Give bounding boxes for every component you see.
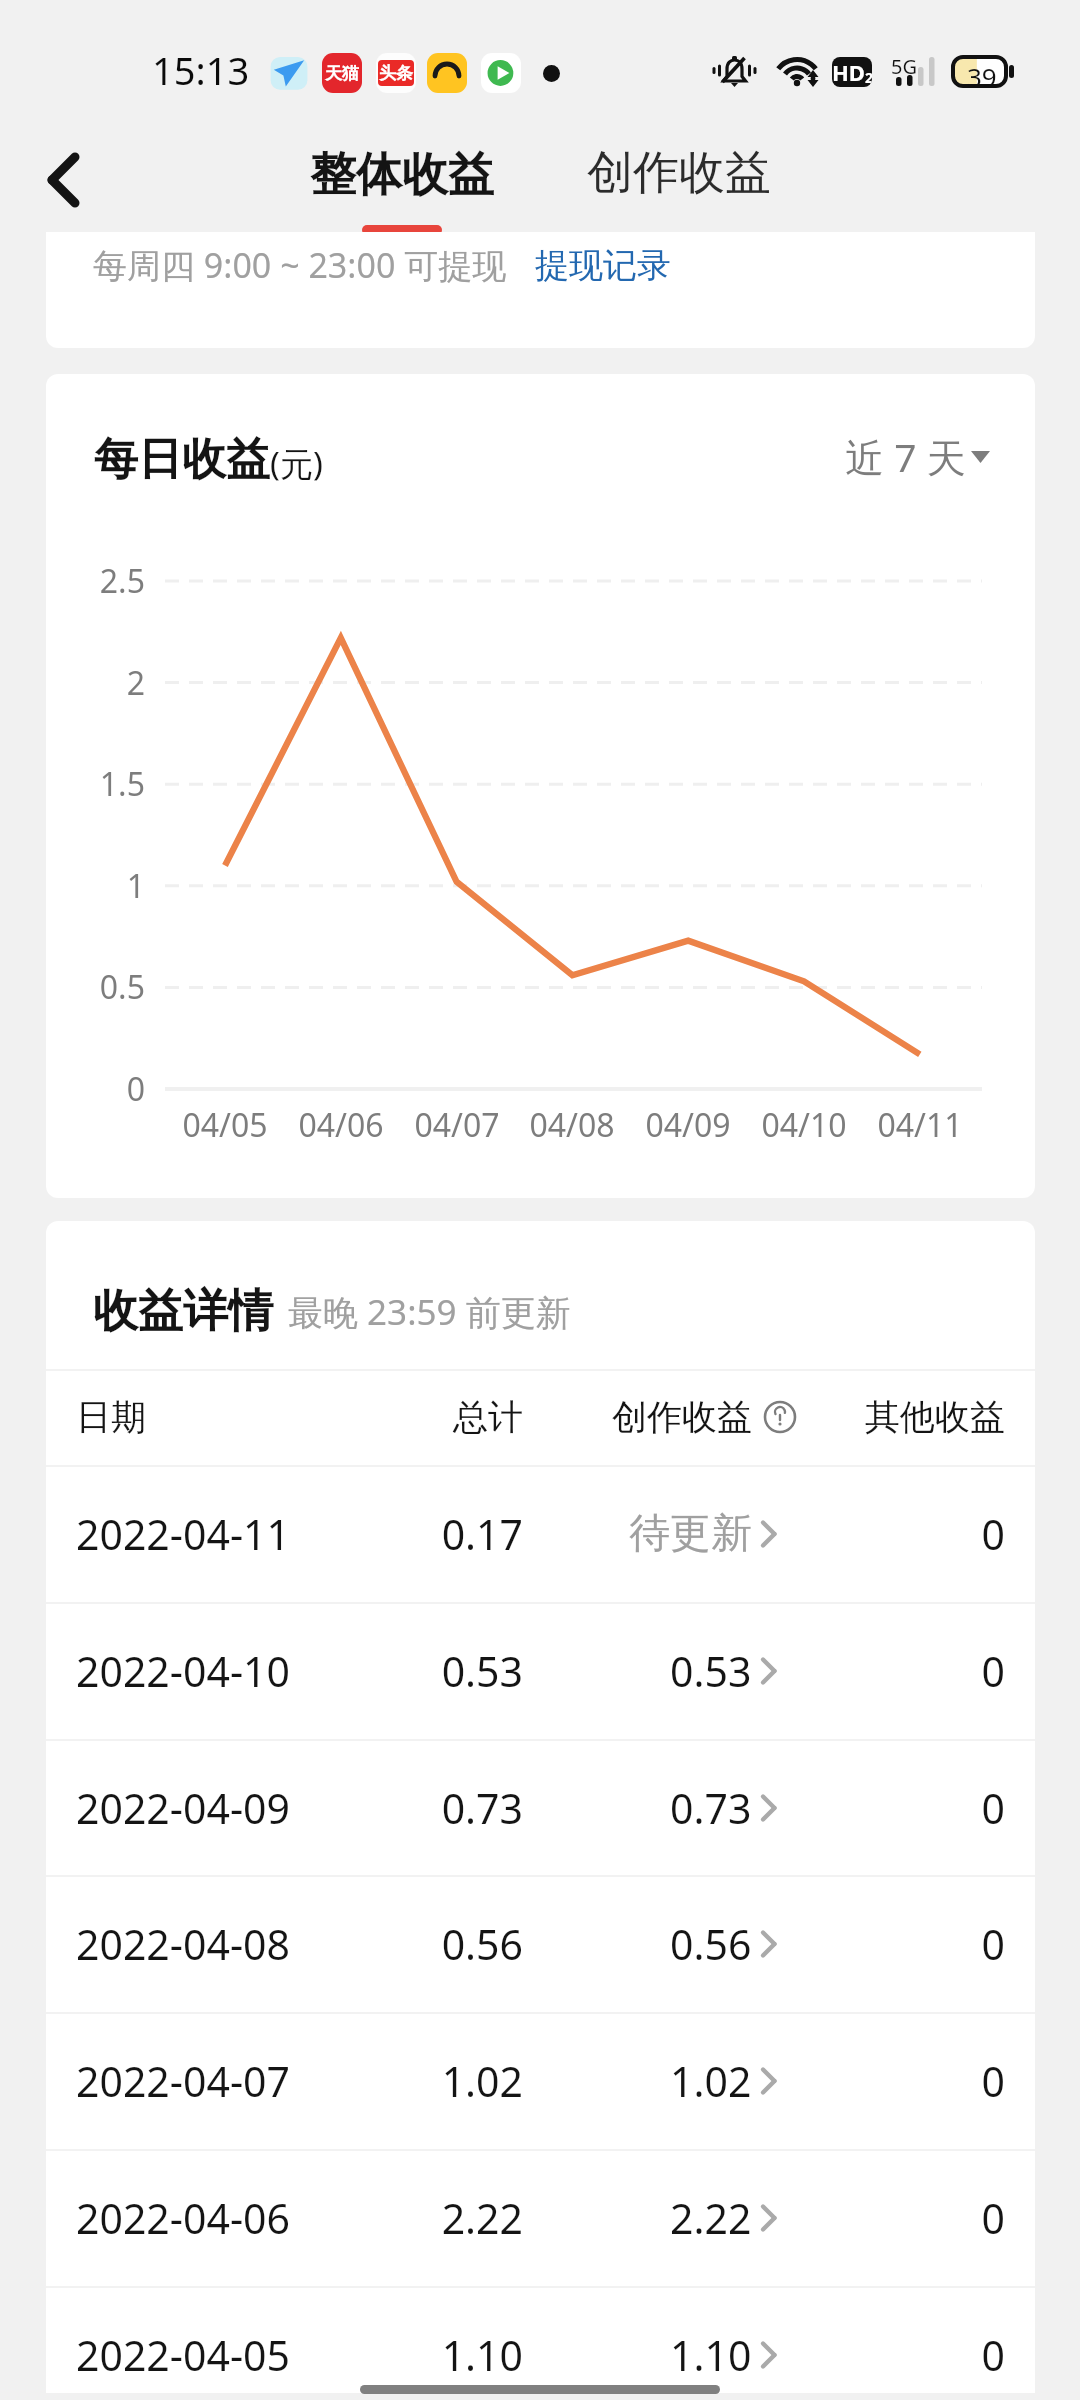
staticText: 2 (865, 68, 872, 87)
staticText: 04/10 (744, 1103, 864, 1147)
button[interactable]: 2022-04-08 (46, 1875, 1035, 2012)
staticText: 提现记录 (535, 244, 671, 287)
staticText: 2022-04-07 (76, 2053, 291, 2109)
staticText: 2022-04-09 (76, 1780, 291, 1836)
staticText: 2022-04-10 (76, 1643, 291, 1699)
staticText: 0.73 (670, 1780, 752, 1836)
staticText: 5G (891, 53, 917, 80)
staticText: 整体收益 (310, 146, 494, 204)
staticText: 待更新 (629, 1508, 752, 1560)
staticText: 每周四 9:00 ~ 23:00 可提现 (93, 242, 507, 288)
staticText: 04/09 (628, 1103, 748, 1147)
staticText: 2022-04-06 (76, 2190, 291, 2246)
staticText: 0 (805, 1506, 1005, 1562)
staticText: 0.17 (253, 1506, 523, 1562)
button[interactable]: 2022-04-06 (46, 2149, 1035, 2286)
staticText: 1.10 (670, 2327, 752, 2383)
staticText: 2022-04-05 (76, 2327, 291, 2383)
staticText: 0 (805, 1780, 1005, 1836)
staticText: 0.73 (253, 1780, 523, 1836)
button[interactable]: 整体收益 (297, 128, 507, 228)
staticText: 2022-04-08 (76, 1916, 291, 1972)
staticText: 1.02 (670, 2053, 752, 2109)
staticText: 04/11 (860, 1103, 980, 1147)
staticText: 收益详情 (93, 1283, 273, 1340)
staticText: 1.02 (253, 2053, 523, 2109)
staticText: 0.56 (253, 1916, 523, 1972)
staticText: 2.22 (253, 2190, 523, 2246)
button[interactable]: 提现记录 (535, 244, 671, 287)
staticText: 1.10 (253, 2327, 523, 2383)
button[interactable]: 创作收益 (574, 128, 784, 228)
staticText: 0 (805, 1916, 1005, 1972)
staticText: 0.5 (46, 965, 145, 1009)
staticText: 39 (967, 59, 997, 94)
button[interactable]: Back (14, 132, 104, 222)
button[interactable]: 2022-04-10 (46, 1602, 1035, 1739)
staticText: 创作收益 (587, 144, 771, 202)
staticText: 近 7 天 (845, 430, 966, 483)
staticText: 0.53 (670, 1643, 752, 1699)
button[interactable]: 2022-04-09 (46, 1739, 1035, 1876)
staticText: 1.5 (46, 762, 145, 806)
staticText: 2022-04-11 (76, 1506, 291, 1562)
staticText: 04/05 (165, 1103, 285, 1147)
staticText: 创作收益 (612, 1395, 752, 1439)
staticText: 头条 (379, 63, 413, 84)
staticText: 04/06 (281, 1103, 401, 1147)
staticText: 其他收益 (805, 1395, 1005, 1439)
staticText: 04/07 (397, 1103, 517, 1147)
staticText: 15:13 (152, 44, 250, 96)
staticText: 每日收益 (94, 432, 270, 487)
staticText: 0 (805, 2327, 1005, 2383)
staticText: 总计 (253, 1395, 523, 1439)
staticText: 0.53 (253, 1643, 523, 1699)
staticText: 天猫 (325, 63, 359, 84)
staticText: 2.5 (46, 559, 145, 603)
button[interactable]: 2022-04-07 (46, 2012, 1035, 2149)
staticText: 最晚 23:59 前更新 (288, 1288, 571, 1336)
staticText: HD (832, 57, 865, 87)
staticText: (元) (270, 441, 323, 486)
button[interactable]: 近 7 天 (836, 430, 990, 483)
staticText: 0 (805, 2053, 1005, 2109)
staticText: 0 (805, 2190, 1005, 2246)
staticText: 0.56 (670, 1916, 752, 1972)
button[interactable]: 2022-04-11 (46, 1465, 1035, 1602)
staticText: 0 (805, 1643, 1005, 1699)
staticText: 2.22 (670, 2190, 752, 2246)
staticText: 1 (46, 864, 145, 908)
staticText: 0 (46, 1067, 145, 1111)
button[interactable]: 2022-04-05 (46, 2286, 1035, 2393)
staticText: 2 (46, 661, 145, 705)
staticText: 04/08 (512, 1103, 632, 1147)
staticText: 日期 (76, 1395, 146, 1439)
